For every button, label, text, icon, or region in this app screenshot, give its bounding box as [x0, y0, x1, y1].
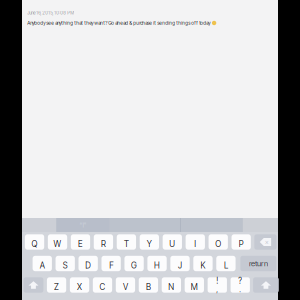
button[interactable]: J — [170, 256, 190, 271]
staticText: V — [123, 282, 128, 292]
staticText: I — [194, 239, 196, 249]
button[interactable]: Q — [25, 234, 44, 250]
staticText: R — [101, 239, 106, 249]
staticText: G — [131, 260, 137, 270]
staticText: S — [63, 260, 68, 270]
button[interactable]: Shift — [23, 277, 43, 293]
button[interactable]: L — [216, 256, 236, 271]
staticText: ? — [238, 276, 242, 286]
staticText: M — [191, 282, 198, 292]
staticText: T — [124, 239, 129, 249]
button[interactable]: C — [93, 277, 112, 293]
button[interactable]: Y — [140, 234, 159, 250]
staticText: ! — [216, 276, 218, 286]
staticText: Q — [31, 239, 37, 249]
button[interactable]: H — [147, 256, 167, 271]
button[interactable]: ! — [208, 277, 227, 293]
button[interactable]: F — [101, 256, 121, 271]
staticText: K — [200, 260, 205, 270]
staticText: return — [249, 259, 268, 268]
staticText: H — [154, 260, 160, 270]
button[interactable]: Delete — [254, 234, 276, 250]
button[interactable]: E — [71, 234, 90, 250]
staticText: U — [169, 239, 175, 249]
button[interactable]: G — [124, 256, 144, 271]
button[interactable]: B — [139, 277, 158, 293]
button[interactable]: Shift — [253, 277, 279, 293]
button[interactable]: S — [56, 256, 75, 271]
staticText: Y — [147, 239, 152, 249]
staticText: Anybody see anything that they want? Go … — [27, 20, 210, 26]
staticText: A — [40, 260, 45, 270]
staticText: O — [215, 239, 221, 249]
button[interactable]: M — [185, 277, 204, 293]
button[interactable]: Z — [47, 277, 66, 293]
button[interactable]: Return — [240, 256, 276, 271]
staticText: N — [168, 282, 174, 292]
button[interactable]: U — [163, 234, 182, 250]
button[interactable]: T — [117, 234, 136, 250]
staticText: W — [53, 239, 61, 249]
button[interactable]: A — [33, 256, 52, 271]
button[interactable]: O — [209, 234, 228, 250]
staticText: , — [216, 286, 218, 294]
staticText: F — [109, 260, 113, 270]
staticText: B — [146, 282, 151, 292]
button[interactable]: P — [231, 234, 251, 250]
button[interactable]: N — [162, 277, 181, 293]
staticText: C — [99, 282, 105, 292]
staticText: E — [78, 239, 83, 249]
button[interactable]: I — [186, 234, 205, 250]
staticText: “I” — [79, 221, 86, 229]
staticText: L — [224, 260, 228, 270]
staticText: Z — [54, 282, 59, 292]
staticText: × — [265, 238, 269, 246]
staticText: P — [239, 239, 244, 249]
staticText: . — [239, 286, 241, 294]
button[interactable]: R — [94, 234, 113, 250]
button[interactable]: V — [116, 277, 135, 293]
button[interactable]: W — [48, 234, 67, 250]
button[interactable]: X — [70, 277, 89, 293]
staticText: X — [77, 282, 82, 292]
staticText: June 16, 2015, 10:08 PM — [27, 10, 74, 16]
button[interactable]: ? — [231, 277, 250, 293]
button[interactable]: D — [78, 256, 98, 271]
staticText: J — [178, 260, 182, 270]
button[interactable]: K — [193, 256, 213, 271]
staticText: D — [85, 260, 91, 270]
